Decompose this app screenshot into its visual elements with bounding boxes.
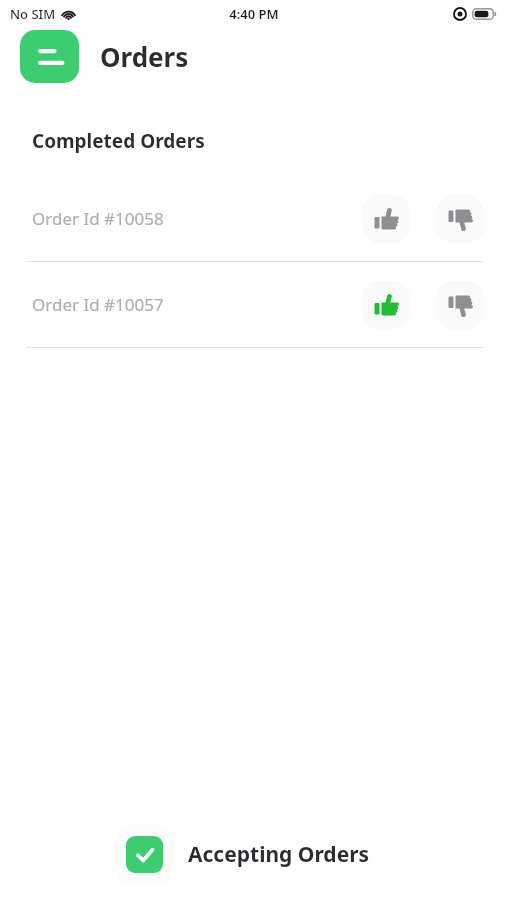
button[interactable]: Order Id #10058 xyxy=(8,176,506,261)
button[interactable]: Open menu xyxy=(20,30,79,83)
staticText: Accepting Orders xyxy=(188,840,370,869)
button[interactable]: Thumbs down xyxy=(436,195,484,243)
button[interactable]: Thumbs down xyxy=(436,281,484,329)
button[interactable]: Thumbs up xyxy=(362,281,410,329)
button[interactable]: Order Id #10057 xyxy=(8,262,506,347)
button[interactable]: Accepting Orders xyxy=(114,824,370,884)
staticText: Orders xyxy=(100,39,189,74)
staticText: No SIM xyxy=(10,5,56,23)
staticText: Completed Orders xyxy=(32,128,205,154)
staticText: Order Id #10058 xyxy=(32,207,164,230)
button[interactable]: Thumbs up xyxy=(362,195,410,243)
staticText: 4:40 PM xyxy=(229,5,279,23)
staticText: Order Id #10057 xyxy=(32,293,164,316)
